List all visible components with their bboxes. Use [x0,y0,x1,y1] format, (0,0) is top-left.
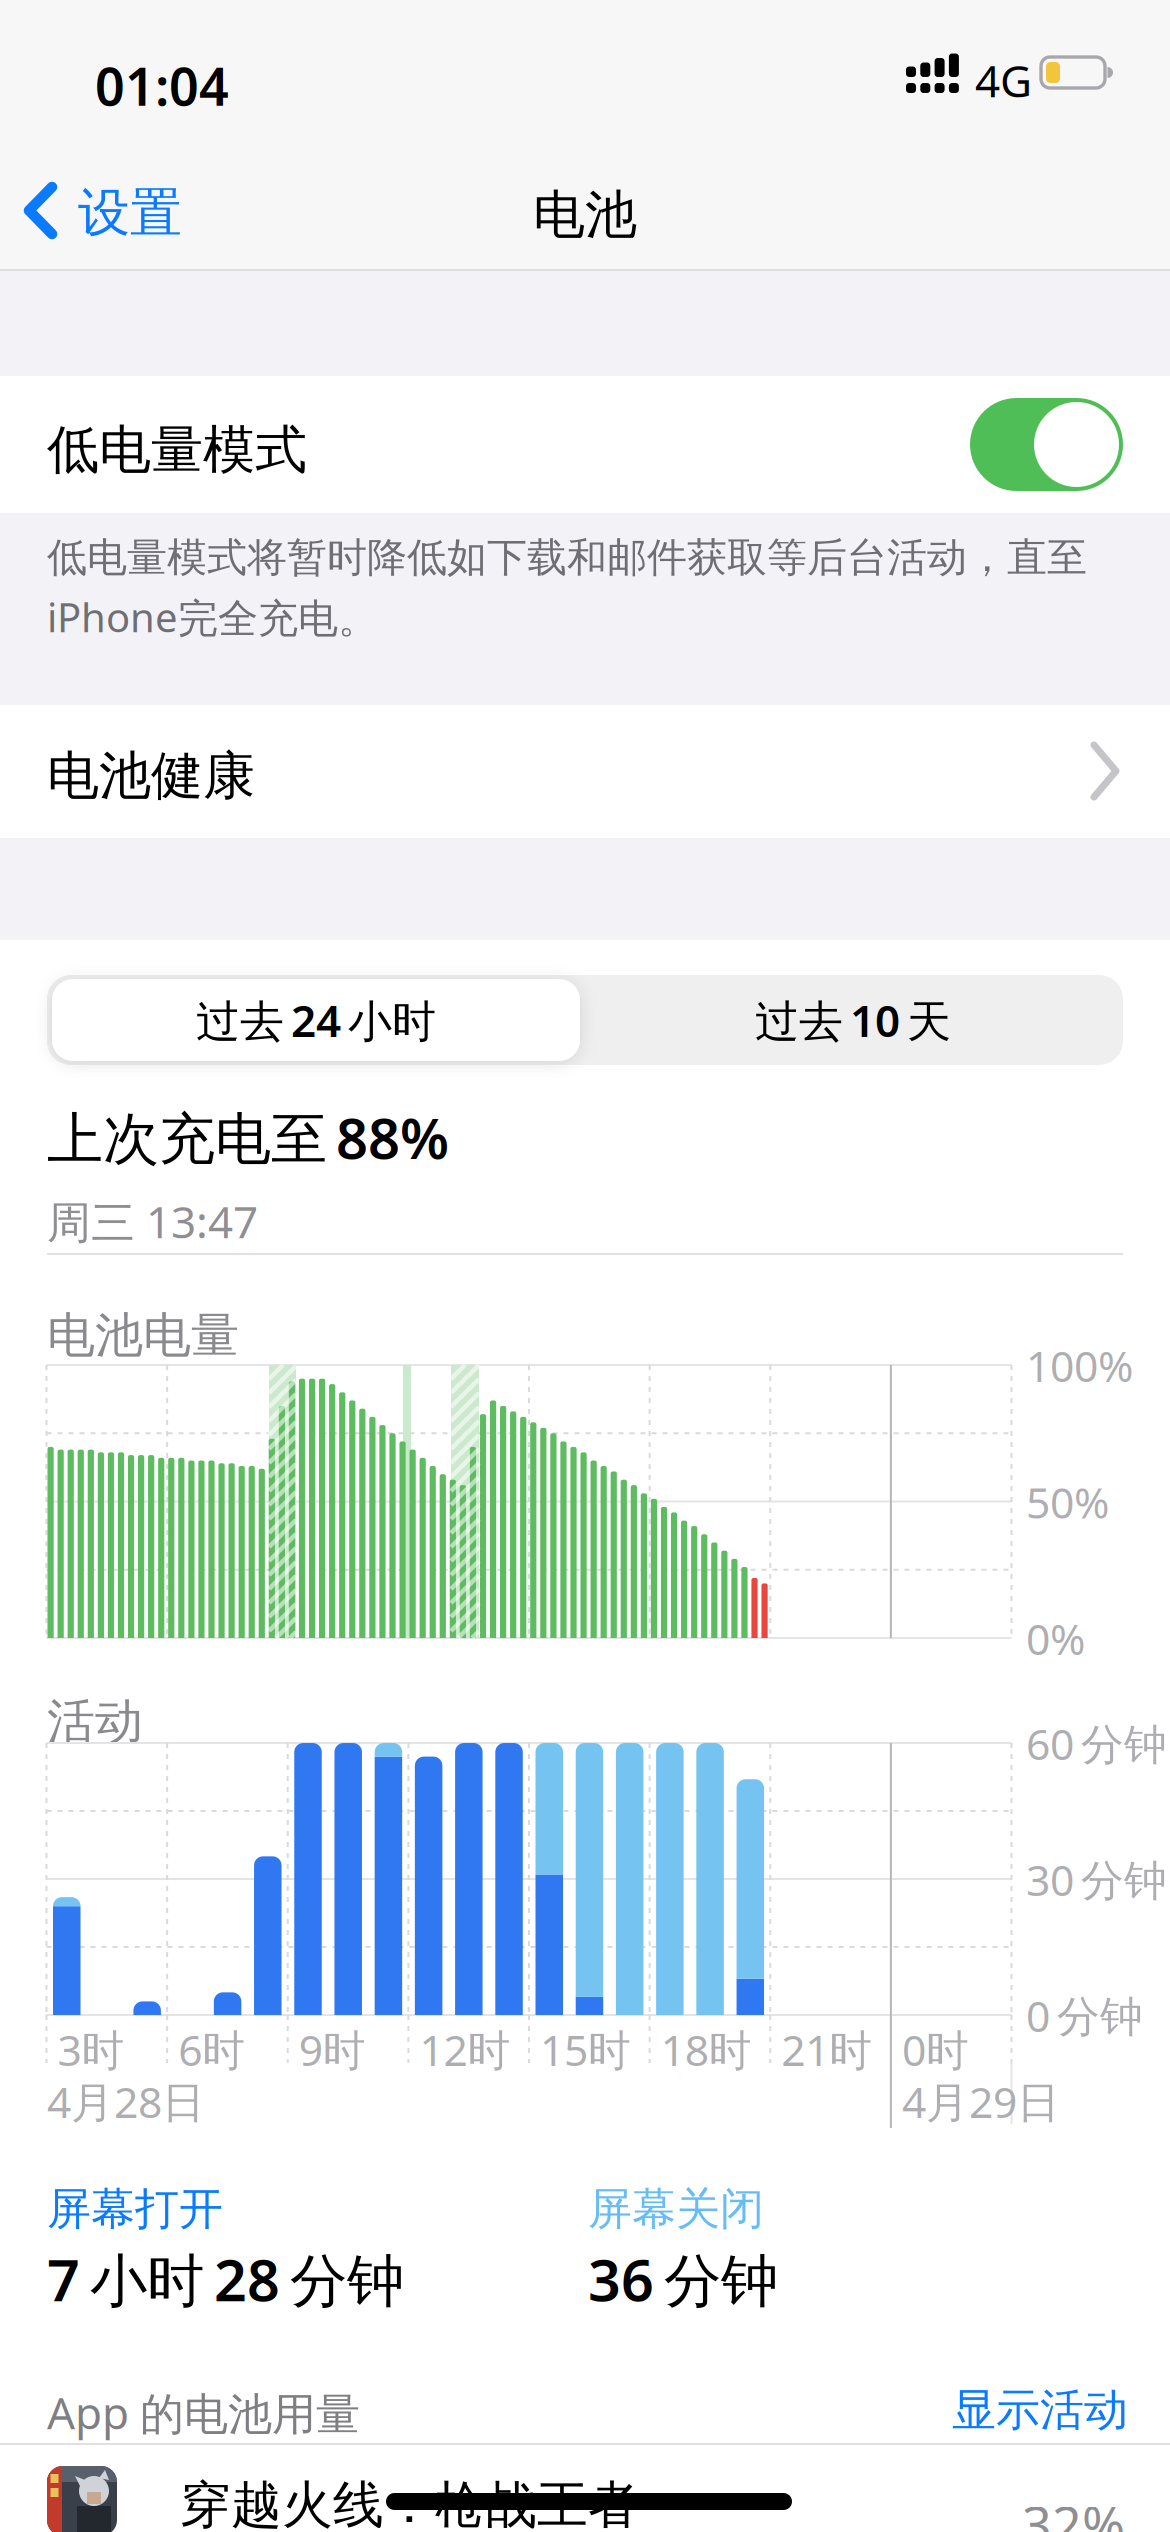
staticText: 30 分钟 [1026,1851,1167,1908]
staticText: 过去 10 天 [755,991,951,1049]
staticText: 电池电量 [47,1306,239,1365]
staticText: 活动 [47,1692,143,1751]
staticText: 3时 [57,2021,124,2078]
button[interactable]: 返回设置 [18,170,238,250]
staticText: 9时 [299,2021,366,2078]
button[interactable]: 显示活动 [952,2383,1128,2437]
staticText: 4月28日 [47,2073,205,2130]
staticText: 32% [1022,2490,1125,2532]
staticText: 50% [1026,1473,1109,1530]
staticText: 60 分钟 [1026,1715,1167,1772]
button[interactable]: 穿越火线：枪战王者 [0,2446,1170,2532]
staticText: 设置 [78,181,182,245]
staticText: 01:04 [95,51,229,120]
staticText: 上次充电至 88% [47,1100,449,1174]
staticText: 21时 [781,2021,872,2078]
staticText: 低电量模式 [47,418,307,482]
staticText: 电池健康 [47,744,255,808]
staticText: 0 分钟 [1026,1987,1143,2044]
staticText: App 的电池用量 [47,2383,360,2442]
staticText: 4月29日 [902,2073,1060,2130]
button[interactable]: 过去 24 小时 [49,975,583,1065]
button[interactable]: 电池健康 [0,705,1170,838]
staticText: 18时 [661,2021,752,2078]
staticText: 屏幕关闭 [588,2182,764,2236]
staticText: 屏幕打开 [47,2182,223,2236]
staticText: 过去 24 小时 [196,991,436,1049]
staticText: 7 小时 28 分钟 [47,2241,404,2317]
staticText: 100% [1026,1337,1133,1394]
staticText: 电池 [533,183,637,247]
staticText: 0% [1026,1610,1085,1667]
staticText: 6时 [178,2021,245,2078]
button[interactable]: 过去 10 天 [583,975,1123,1065]
staticText: 低电量模式将暂时降低如下载和邮件获取等后台活动，直至 iPhone完全充电。 [47,533,1087,643]
staticText: 4G [975,51,1032,109]
button[interactable]: 低电量模式开关 [970,398,1123,491]
staticText: 穿越火线：枪战王者 [180,2474,639,2532]
staticText: 36 分钟 [588,2241,778,2317]
staticText: 显示活动 [952,2383,1128,2437]
staticText: 0时 [902,2021,969,2078]
staticText: 15时 [540,2021,631,2078]
staticText: 周三 13:47 [47,1192,258,1250]
staticText: 12时 [419,2021,510,2078]
